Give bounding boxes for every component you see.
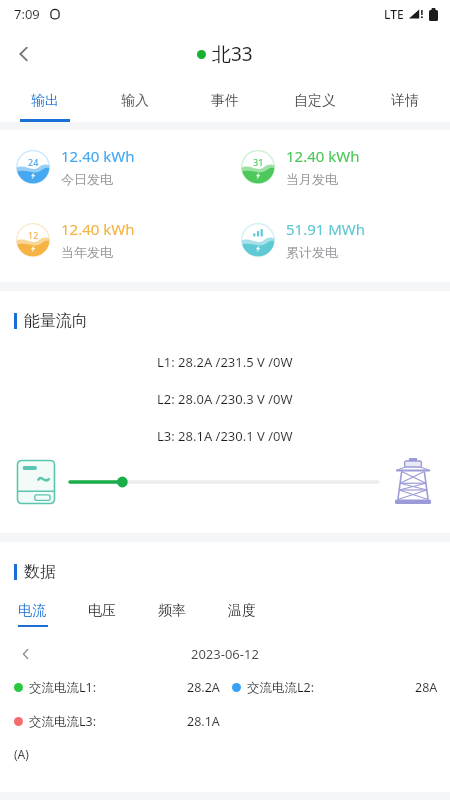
staticText: 12.40 kWh — [286, 146, 360, 166]
staticText: LTE — [384, 6, 404, 22]
button[interactable]: 输入 — [90, 80, 180, 122]
button[interactable]: 温度 — [228, 602, 298, 625]
button[interactable]: 51.91 MWh — [225, 219, 450, 260]
staticText: 详情 — [391, 92, 419, 110]
staticText: (A) — [14, 746, 29, 762]
staticText: 自定义 — [294, 92, 336, 110]
button[interactable]: 24 — [0, 146, 225, 187]
staticText: 当月发电 — [286, 171, 338, 187]
staticText: 电流 — [18, 602, 46, 620]
button[interactable]: 交流电流L2: — [232, 679, 450, 696]
staticText: 频率 — [158, 602, 186, 620]
button[interactable]: 自定义 — [270, 80, 360, 122]
staticText: 24 — [28, 156, 39, 168]
button[interactable]: 详情 — [360, 80, 450, 122]
staticText: 今日发电 — [61, 171, 113, 187]
button[interactable]: 输出 — [0, 80, 90, 122]
staticText: 28.1A — [187, 713, 220, 730]
button[interactable]: 交流电流L1: — [14, 679, 232, 696]
staticText: L2: 28.0A /230.3 V /0W — [157, 390, 293, 408]
staticText: 12.40 kWh — [61, 219, 135, 239]
button[interactable]: 电压 — [88, 602, 158, 625]
staticText: 事件 — [211, 92, 239, 110]
staticText: 交流电流L2: — [247, 679, 315, 696]
staticText: 北33 — [212, 41, 253, 67]
staticText: 28.2A — [187, 679, 220, 696]
staticText: 28A — [415, 679, 438, 696]
staticText: 31 — [253, 156, 264, 168]
staticText: 输入 — [121, 92, 149, 110]
button[interactable]: 频率 — [158, 602, 228, 625]
staticText: 输出 — [31, 92, 59, 110]
button[interactable]: 事件 — [180, 80, 270, 122]
button[interactable]: 电流 — [18, 602, 88, 627]
staticText: 51.91 MWh — [286, 219, 366, 239]
button[interactable]: 交流电流L3: — [14, 713, 232, 730]
button[interactable]: Back — [0, 30, 48, 78]
button[interactable]: 31 — [225, 146, 450, 187]
button[interactable]: Previous day — [10, 641, 42, 667]
staticText: 2023-06-12 — [191, 645, 259, 663]
staticText: 12 — [28, 229, 39, 241]
staticText: L1: 28.2A /231.5 V /0W — [157, 353, 293, 371]
staticText: 电压 — [88, 602, 116, 620]
staticText: 当年发电 — [61, 244, 113, 260]
staticText: 数据 — [24, 562, 56, 582]
staticText: 能量流向 — [24, 311, 88, 331]
staticText: 12.40 kWh — [61, 146, 135, 166]
staticText: 7:09 — [14, 5, 40, 23]
staticText: 交流电流L1: — [29, 679, 97, 696]
button[interactable]: 12 — [0, 219, 225, 260]
staticText: 累计发电 — [286, 244, 338, 260]
staticText: 温度 — [228, 602, 256, 620]
staticText: L3: 28.1A /230.1 V /0W — [157, 427, 293, 445]
staticText: 交流电流L3: — [29, 713, 97, 730]
